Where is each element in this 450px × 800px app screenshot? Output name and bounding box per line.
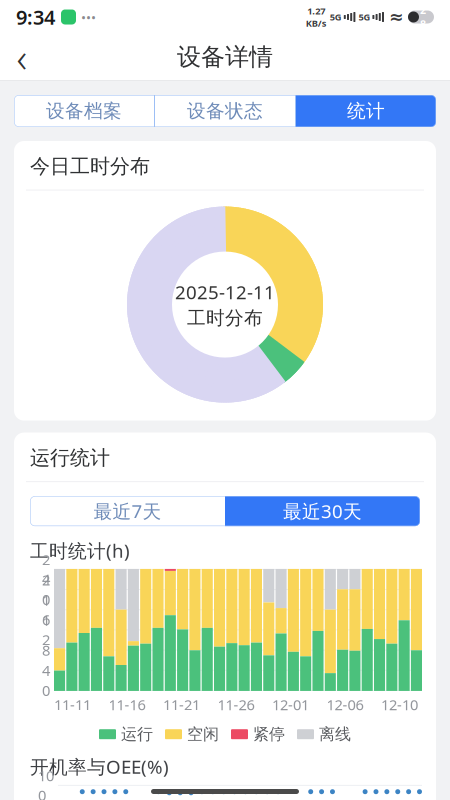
staticText: ≈	[389, 7, 404, 27]
staticText: 11-11	[54, 695, 91, 714]
staticText: 1.27	[307, 5, 325, 17]
staticText: 工时统计(h)	[30, 538, 130, 563]
staticText: 0	[42, 681, 50, 700]
staticText: 12-01	[272, 695, 309, 714]
staticText: 11-16	[108, 695, 145, 714]
staticText: •••	[81, 8, 96, 26]
staticText: 紧停	[253, 724, 285, 744]
button[interactable]: 设备状态	[155, 95, 295, 127]
staticText: 今日工时分布	[30, 154, 150, 179]
staticText: ‹	[16, 30, 27, 83]
staticText: 最近7天	[93, 499, 161, 523]
staticText: 12-06	[326, 695, 363, 714]
staticText: 4	[42, 660, 50, 680]
staticText: 统计	[347, 99, 385, 122]
button[interactable]: 统计	[296, 95, 436, 127]
staticText: 9:34	[16, 4, 55, 30]
staticText: 16	[42, 590, 50, 629]
staticText: 设备详情	[177, 42, 273, 72]
staticText: KB/s	[306, 17, 327, 29]
staticText: 11-26	[217, 695, 254, 714]
staticText: 离线	[319, 724, 351, 744]
staticText: 空闲	[187, 724, 219, 744]
staticText: 工时分布	[187, 306, 263, 329]
staticText: 8	[42, 640, 50, 660]
button[interactable]: 最近30天	[225, 496, 420, 526]
button[interactable]: 返回	[0, 35, 44, 79]
staticText: 运行	[121, 724, 153, 744]
button[interactable]: 最近7天	[30, 496, 225, 526]
staticText: 开机率与OEE(%)	[30, 754, 169, 779]
staticText: 5G	[330, 11, 342, 23]
button[interactable]: 设备档案	[14, 95, 154, 127]
staticText: 100	[38, 766, 54, 800]
staticText: 5G	[358, 11, 370, 23]
staticText: 最近30天	[283, 499, 362, 523]
staticText: 11-21	[163, 695, 200, 714]
staticText: 12-10	[381, 695, 418, 714]
staticText: 20	[42, 570, 50, 609]
staticText: 设备档案	[46, 99, 122, 122]
staticText: 设备状态	[187, 99, 263, 122]
staticText: 运行统计	[30, 446, 110, 470]
staticText: 12	[42, 610, 50, 649]
staticText: 2025-12-11	[175, 280, 275, 304]
staticText: 28	[420, 3, 426, 31]
staticText: 24	[42, 550, 50, 589]
